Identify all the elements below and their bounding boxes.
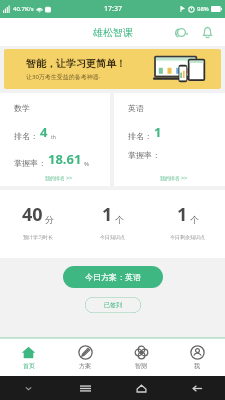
- button[interactable]: 1: [150, 202, 225, 240]
- staticText: 让30万考生受益的备考神器·: [26, 73, 101, 81]
- staticText: 17:37: [104, 4, 122, 14]
- staticText: %: [84, 160, 89, 168]
- staticText: 首页: [23, 362, 35, 370]
- staticText: 4: [40, 123, 48, 141]
- button[interactable]: 我: [169, 338, 225, 376]
- button[interactable]: 英语: [114, 93, 225, 186]
- staticText: 18.61: [48, 150, 82, 168]
- staticText: 1: [102, 202, 113, 227]
- button[interactable]: 数学: [0, 93, 110, 186]
- staticText: 掌握率：: [128, 150, 160, 160]
- staticText: 预计学习时长: [23, 234, 53, 240]
- staticText: 英语: [128, 103, 144, 113]
- staticText: 排名：: [128, 131, 152, 141]
- staticText: 个: [190, 214, 199, 225]
- button[interactable]: 智测: [113, 338, 169, 376]
- staticText: 分: [45, 214, 54, 225]
- staticText: 雄松智课: [93, 26, 133, 39]
- button[interactable]: 方案: [57, 338, 113, 376]
- staticText: 智能，让学习更简单！: [26, 57, 126, 70]
- staticText: 掌握率：: [14, 158, 46, 168]
- staticText: 40: [22, 202, 43, 227]
- staticText: 1: [154, 123, 162, 141]
- staticText: 今日方案：英语: [85, 272, 141, 282]
- staticText: 个: [115, 214, 124, 225]
- staticText: 今日剩余知识点: [170, 234, 205, 240]
- staticText: 智测: [135, 362, 147, 370]
- button[interactable]: Back: [169, 376, 225, 400]
- staticText: 排名：: [14, 131, 38, 141]
- button[interactable]: 首页: [0, 338, 57, 376]
- button[interactable]: Recent apps: [57, 376, 113, 400]
- staticText: 我的排名 >>: [160, 175, 188, 182]
- button[interactable]: 今日方案：英语: [63, 266, 163, 288]
- button[interactable]: Customer service: [171, 22, 191, 42]
- button[interactable]: Home: [113, 376, 169, 400]
- staticText: 今日知识点: [100, 234, 125, 240]
- staticText: 我: [194, 362, 200, 370]
- staticText: 我的排名 >>: [45, 175, 73, 182]
- button[interactable]: 1: [75, 202, 150, 240]
- staticText: 40.7K/s: [13, 5, 34, 13]
- staticText: 98%: [197, 5, 209, 13]
- button[interactable]: 已签到: [85, 297, 141, 313]
- button[interactable]: 40: [0, 202, 75, 240]
- button[interactable]: Notifications: [197, 22, 217, 42]
- button[interactable]: 智能，让学习更简单！: [4, 49, 221, 89]
- staticText: 已签到: [104, 301, 122, 309]
- staticText: 方案: [79, 362, 91, 370]
- staticText: 数学: [14, 103, 30, 113]
- staticText: 1: [177, 202, 188, 227]
- staticText: th: [51, 134, 56, 141]
